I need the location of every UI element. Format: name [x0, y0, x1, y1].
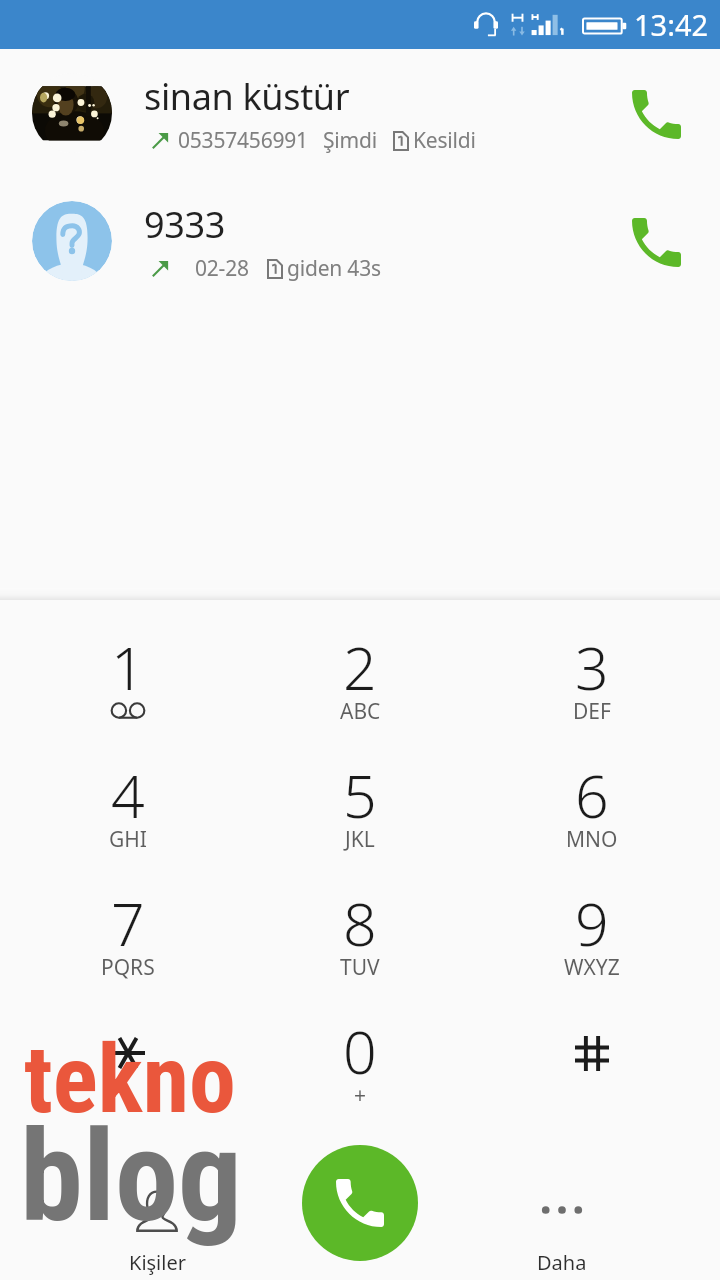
- staticText: Daha: [537, 1249, 587, 1276]
- button[interactable]: [476, 992, 708, 1120]
- staticText: JKL: [345, 825, 375, 854]
- button[interactable]: 9: [476, 864, 708, 992]
- staticText: giden 43s: [287, 254, 381, 283]
- button[interactable]: 5: [244, 736, 476, 864]
- button[interactable]: 2: [244, 608, 476, 736]
- button[interactable]: [12, 992, 244, 1120]
- button[interactable]: 6: [476, 736, 708, 864]
- button[interactable]: 4: [12, 736, 244, 864]
- staticText: TUV: [340, 953, 380, 982]
- button[interactable]: Call 9333: [598, 177, 720, 305]
- staticText: 0: [343, 1011, 377, 1091]
- button[interactable]: Kişiler: [41, 1178, 273, 1280]
- staticText: Kişiler: [129, 1249, 186, 1276]
- staticText: 9333: [144, 200, 225, 249]
- staticText: 13:42: [634, 5, 709, 44]
- button[interactable]: sinan küstür: [0, 49, 720, 177]
- button[interactable]: Call: [302, 1145, 418, 1261]
- staticText: 05357456991: [178, 126, 308, 155]
- staticText: 4: [111, 755, 145, 835]
- staticText: tekno: [24, 1025, 236, 1135]
- staticText: 2: [343, 627, 377, 707]
- staticText: 02-28: [195, 254, 249, 283]
- staticText: 8: [343, 883, 377, 963]
- button[interactable]: 1: [12, 608, 244, 736]
- staticText: sinan küstür: [144, 72, 350, 121]
- button[interactable]: 0: [244, 992, 476, 1120]
- staticText: Kesildi: [413, 126, 476, 155]
- staticText: +: [354, 1081, 367, 1110]
- staticText: ABC: [340, 697, 381, 726]
- staticText: 7: [111, 883, 145, 963]
- staticText: MNO: [566, 825, 618, 854]
- button[interactable]: 8: [244, 864, 476, 992]
- staticText: Şimdi: [323, 126, 377, 155]
- staticText: WXYZ: [564, 953, 620, 982]
- staticText: 6: [575, 755, 609, 835]
- button[interactable]: 3: [476, 608, 708, 736]
- staticText: 5: [343, 755, 377, 835]
- button[interactable]: Daha: [446, 1178, 678, 1280]
- staticText: 9: [575, 883, 609, 963]
- staticText: blog: [20, 1102, 243, 1251]
- staticText: 3: [575, 627, 609, 707]
- staticText: 1: [111, 627, 145, 707]
- button[interactable]: Call sinan küstür: [598, 49, 720, 177]
- staticText: PQRS: [101, 953, 155, 982]
- staticText: DEF: [573, 697, 611, 726]
- button[interactable]: 7: [12, 864, 244, 992]
- button[interactable]: 9333: [0, 177, 720, 305]
- staticText: GHI: [109, 825, 147, 854]
